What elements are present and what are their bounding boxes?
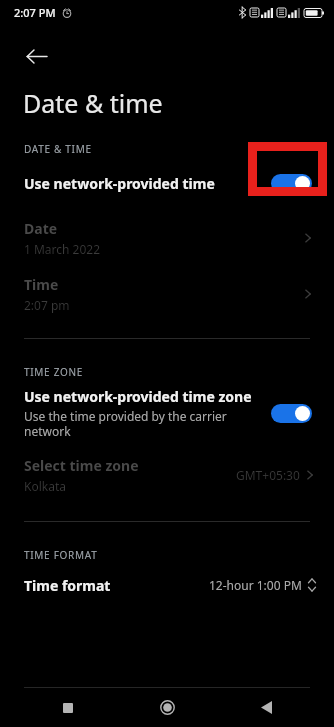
button[interactable]: Time format	[0, 562, 334, 608]
button[interactable]: Use network-provided time	[0, 156, 334, 210]
button[interactable]: Use network-provided time zone	[0, 379, 334, 447]
button[interactable]: Date	[0, 210, 334, 266]
staticText: Select time zone	[24, 456, 139, 475]
staticText: 1 March 2022	[24, 241, 101, 257]
staticText: 2:07 pm	[24, 297, 70, 313]
staticText: 2:07 PM	[14, 5, 56, 20]
button[interactable]: Back	[223, 688, 334, 727]
button[interactable]: Home	[112, 688, 223, 727]
staticText: TIME FORMAT	[24, 548, 98, 562]
button[interactable]: Select time zone	[0, 447, 334, 503]
staticText: Time format	[24, 576, 209, 595]
staticText: Date & time	[23, 86, 163, 120]
staticText: Date	[24, 219, 58, 238]
button[interactable]: Time	[0, 266, 334, 322]
button[interactable]: Back	[12, 32, 60, 80]
staticText: 12-hour 1:00 PM	[209, 577, 302, 593]
button[interactable]: Recent apps	[0, 688, 112, 727]
staticText: Time	[24, 275, 59, 294]
staticText: Use the time provided by the carrier net…	[24, 408, 259, 439]
button[interactable]: Toggle	[271, 174, 312, 193]
staticText: Use network-provided time	[24, 174, 271, 193]
staticText: GMT+05:30	[236, 467, 300, 483]
staticText: DATE & TIME	[24, 142, 92, 156]
staticText: TIME ZONE	[24, 365, 84, 379]
staticText: Use network-provided time zone	[24, 387, 252, 406]
staticText: Kolkata	[24, 478, 66, 494]
button[interactable]: Toggle	[271, 404, 312, 423]
